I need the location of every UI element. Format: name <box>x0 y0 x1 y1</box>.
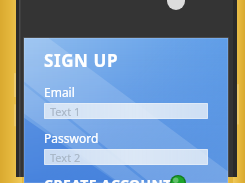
button[interactable]: Text 1 <box>44 103 208 119</box>
button[interactable]: Text 2 <box>44 149 208 165</box>
staticText: Password <box>44 130 99 146</box>
staticText: Text 1 <box>50 104 81 119</box>
other: Pointer <box>170 175 186 183</box>
staticText: Email <box>44 84 75 100</box>
staticText: CREATE ACCOUNT <box>44 175 172 183</box>
staticText: SIGN UP <box>44 49 119 72</box>
staticText: Text 2 <box>50 150 81 165</box>
button[interactable]: CREATE ACCOUNT <box>24 175 228 183</box>
